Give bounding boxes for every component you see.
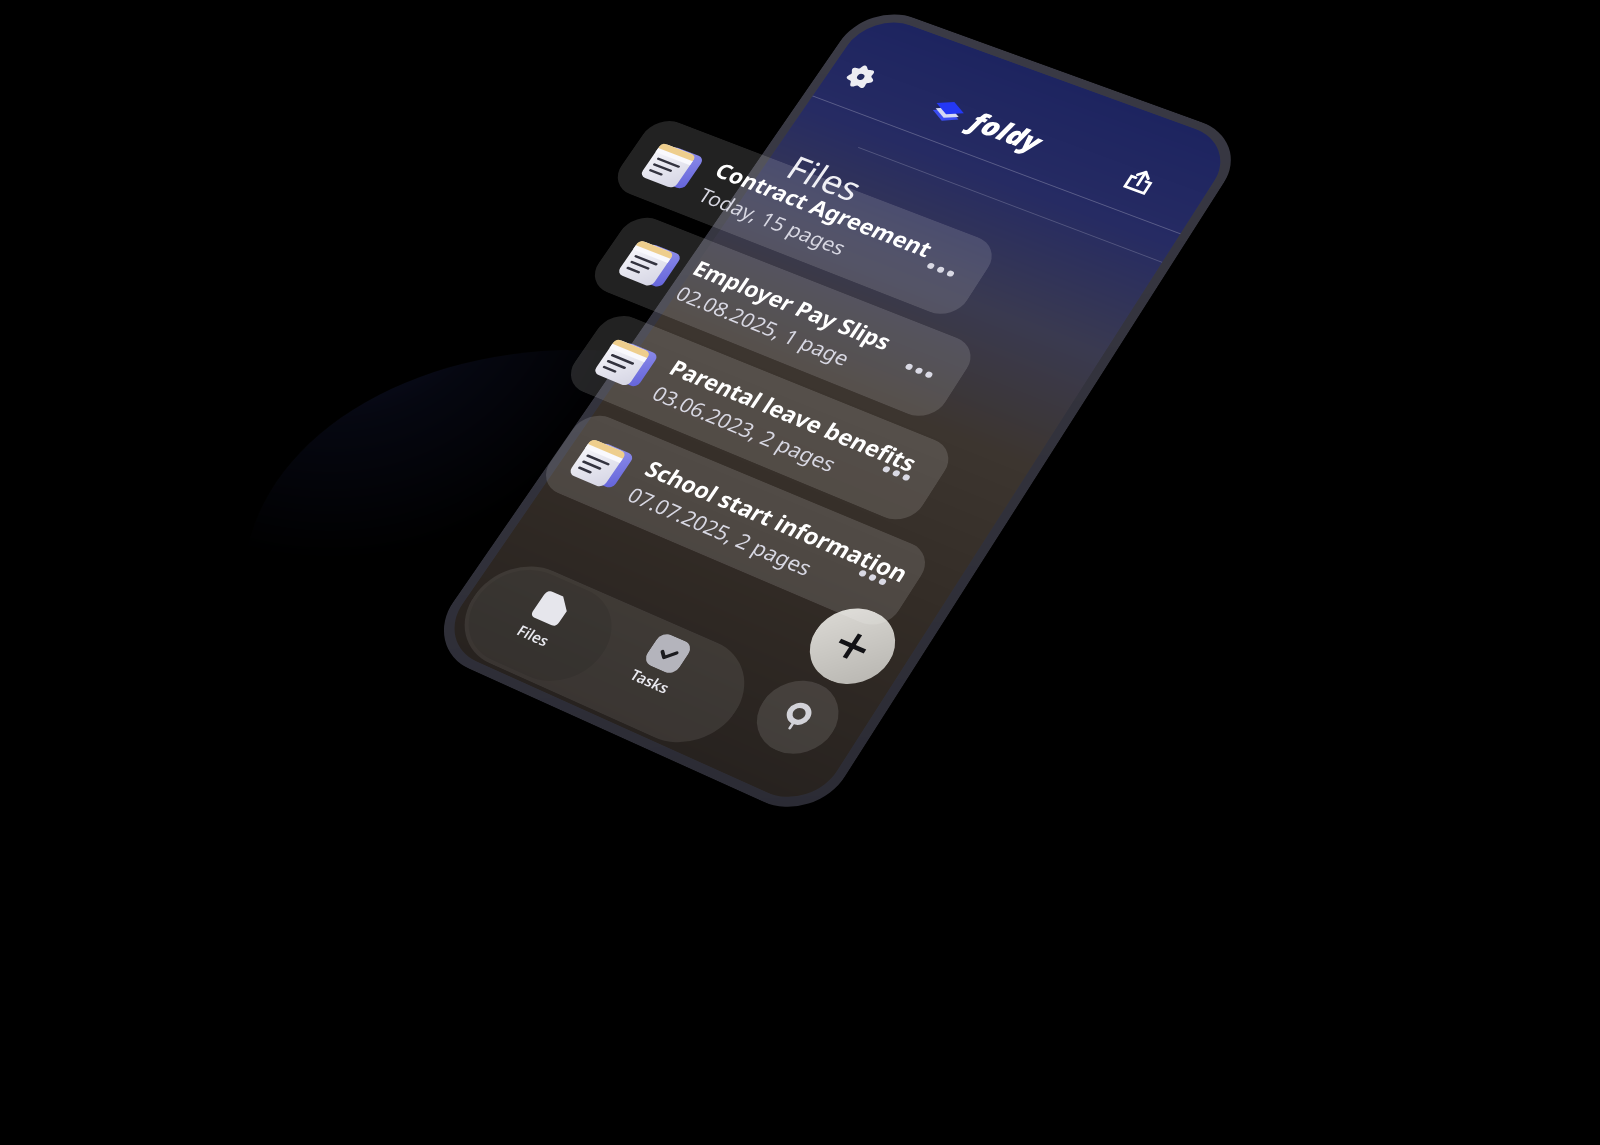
staticText: School start information — [639, 453, 915, 589]
staticText: Employer Pay Slips — [687, 253, 898, 356]
button[interactable]: Employer Pay Slips — [585, 211, 981, 423]
staticText: Contract Agreement — [710, 156, 939, 263]
button[interactable]: Search — [741, 669, 854, 766]
button[interactable]: Contract Agreement — [608, 114, 1002, 321]
staticText: Tasks — [626, 664, 674, 698]
button[interactable]: School start information — [535, 408, 935, 633]
button[interactable]: Settings — [841, 62, 880, 92]
staticText: 02.08.2025, 1 page — [671, 279, 857, 371]
staticText: Files — [513, 620, 554, 651]
button[interactable]: Add — [794, 596, 911, 696]
button[interactable] — [448, 555, 632, 697]
staticText: Today, 15 pages — [694, 181, 852, 260]
staticText: 07.07.2025, 2 pages — [622, 480, 819, 581]
staticText: 03.06.2023, 2 pages — [647, 379, 843, 477]
button[interactable]: Parental leave benefits — [561, 309, 959, 527]
button[interactable]: Tasks — [605, 621, 717, 707]
button[interactable]: foldy — [914, 82, 1053, 165]
staticText: foldy — [963, 104, 1050, 160]
staticText: Files — [778, 145, 873, 210]
staticText: Parental leave benefits — [664, 352, 924, 478]
button[interactable]: Files — [489, 576, 599, 661]
button[interactable]: Share — [1120, 165, 1160, 196]
